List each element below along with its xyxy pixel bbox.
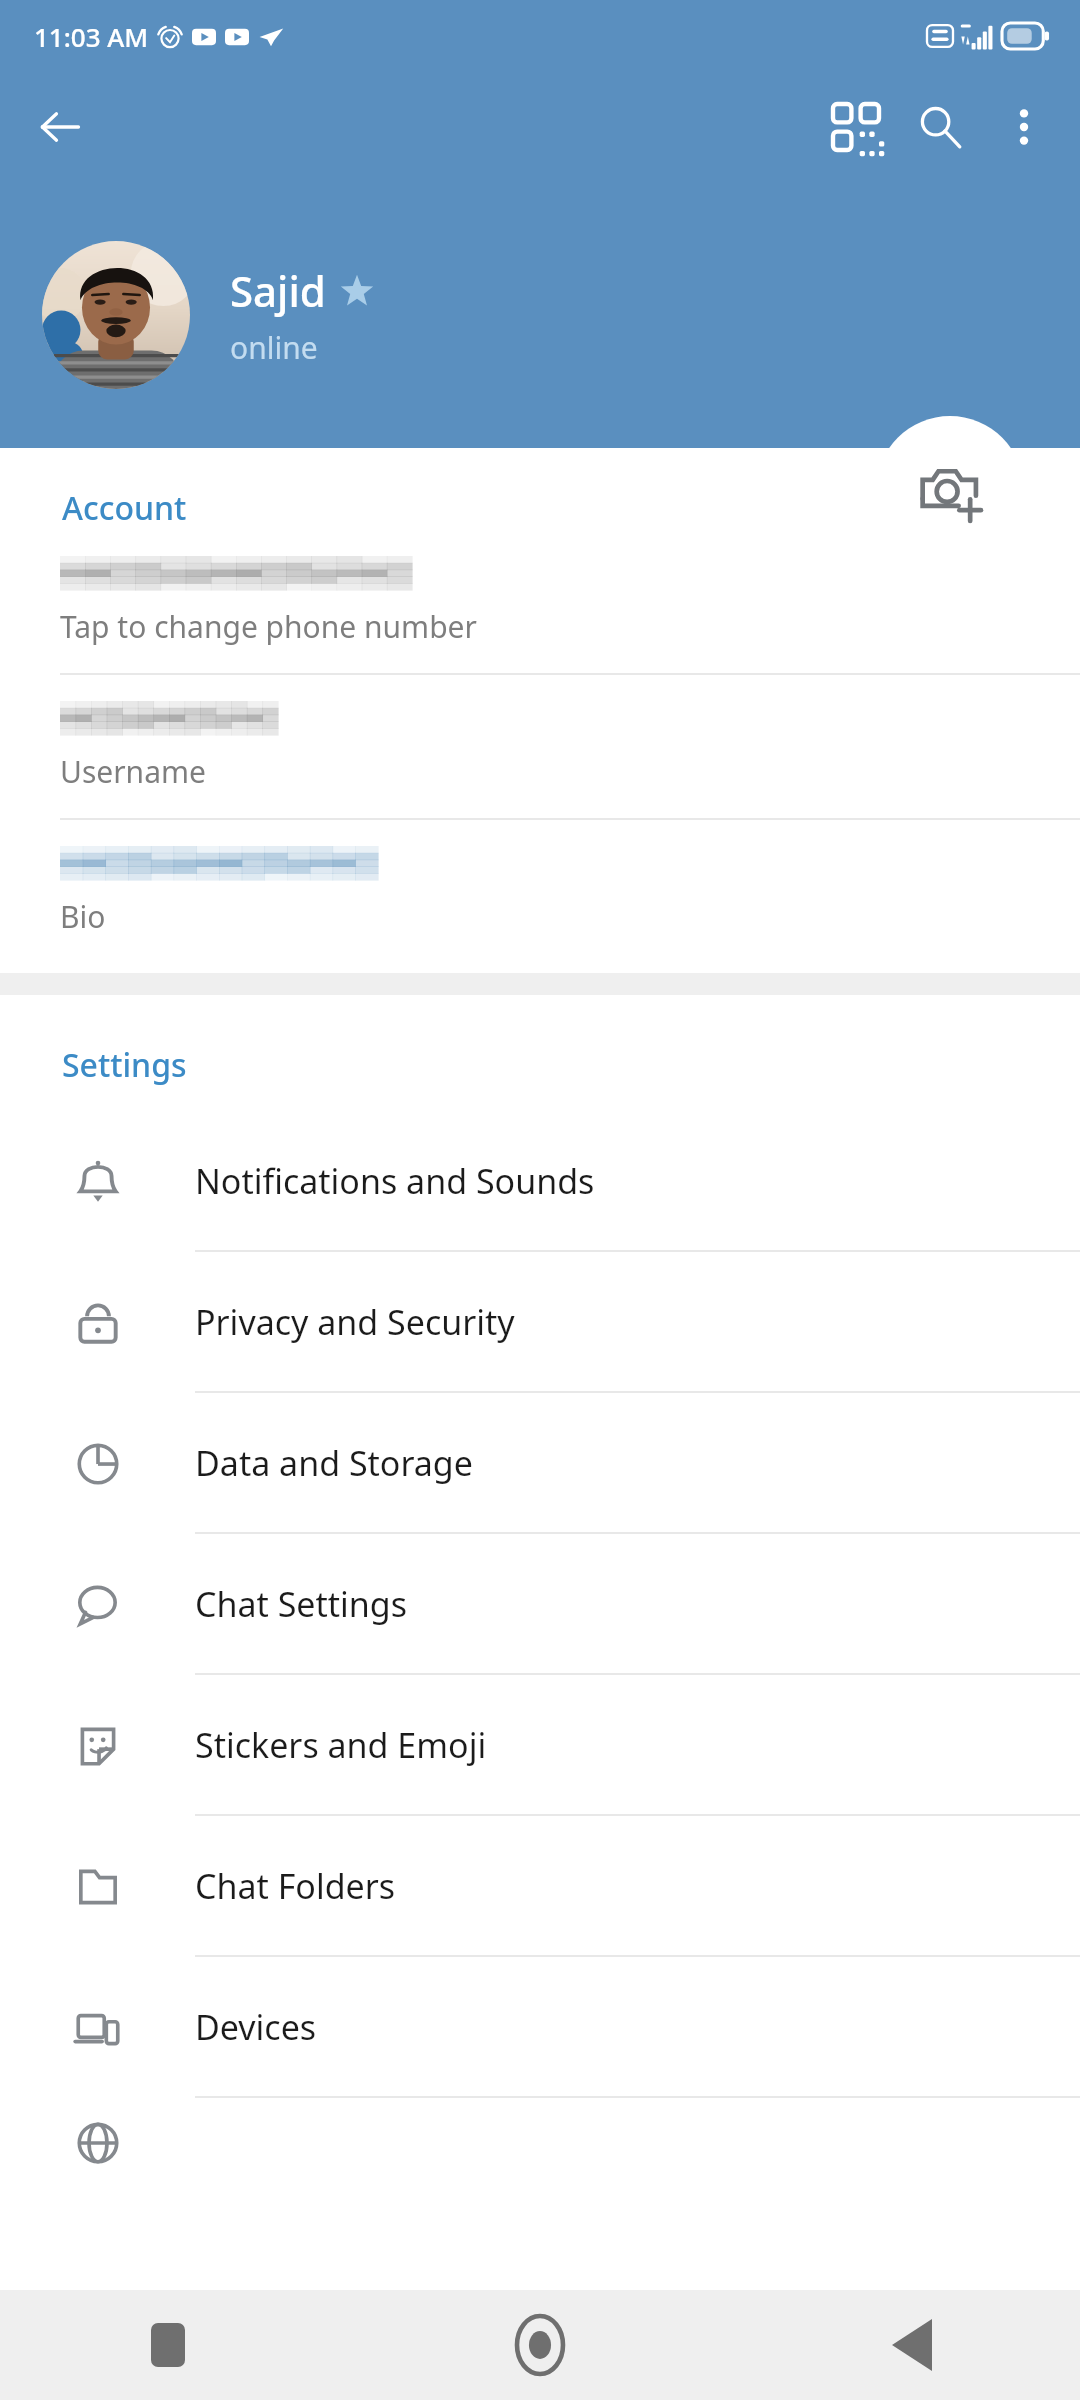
button[interactable]: Stickers and Emoji — [0, 1675, 1080, 1816]
button[interactable]: Chat Folders — [0, 1816, 1080, 1957]
button[interactable]: Notifications and Sounds — [0, 1111, 1080, 1252]
button[interactable]: Bio — [0, 820, 1080, 963]
button[interactable]: Devices — [0, 1957, 1080, 2098]
staticText: Data and Storage — [195, 1440, 473, 1486]
staticText: Chat Settings — [195, 1581, 408, 1627]
staticText: Account — [62, 486, 187, 530]
button[interactable]: Chat Settings — [0, 1534, 1080, 1675]
staticText: Username — [60, 751, 206, 792]
staticText: Tap to change phone number — [60, 606, 477, 647]
staticText: Bio — [60, 896, 106, 937]
button[interactable]: Set profile photo — [876, 416, 1024, 564]
button[interactable]: Data and Storage — [0, 1393, 1080, 1534]
staticText: Sajid — [230, 262, 326, 319]
staticText: Devices — [195, 2004, 317, 2050]
staticText: Settings — [62, 1043, 187, 1087]
button[interactable]: Username — [0, 675, 1080, 820]
staticText: Chat Folders — [195, 1863, 396, 1909]
button[interactable]: Tap to change phone number — [0, 530, 1080, 675]
staticText: Privacy and Security — [195, 1299, 515, 1345]
button[interactable]: Home — [492, 2297, 588, 2393]
staticText: Stickers and Emoji — [195, 1722, 487, 1768]
staticText: online — [230, 327, 318, 368]
button[interactable]: More options — [982, 85, 1066, 169]
button[interactable]: Back — [864, 2297, 960, 2393]
button[interactable]: Scan QR code — [814, 85, 898, 169]
button[interactable]: Back — [18, 85, 102, 169]
button[interactable]: Privacy and Security — [0, 1252, 1080, 1393]
button[interactable]: Recent apps — [120, 2297, 216, 2393]
button[interactable]: Search — [898, 85, 982, 169]
staticText: 11:03 AM — [34, 19, 149, 54]
staticText: Notifications and Sounds — [195, 1158, 595, 1204]
